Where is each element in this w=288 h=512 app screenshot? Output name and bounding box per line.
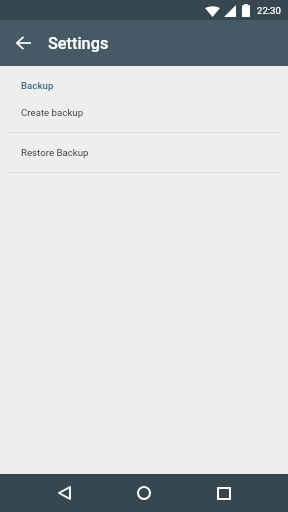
button[interactable]: Home xyxy=(104,474,184,512)
staticText: Settings xyxy=(48,34,109,53)
staticText: Restore Backup xyxy=(21,147,89,158)
button[interactable]: Back xyxy=(6,26,40,60)
button[interactable]: Create backup xyxy=(0,93,288,132)
staticText: Backup xyxy=(21,80,54,91)
button[interactable]: Back xyxy=(24,474,104,512)
staticText: 22:30 xyxy=(257,5,281,16)
button[interactable]: Restore Backup xyxy=(0,133,288,172)
staticText: Create backup xyxy=(21,107,84,118)
button[interactable]: Recents xyxy=(184,474,264,512)
